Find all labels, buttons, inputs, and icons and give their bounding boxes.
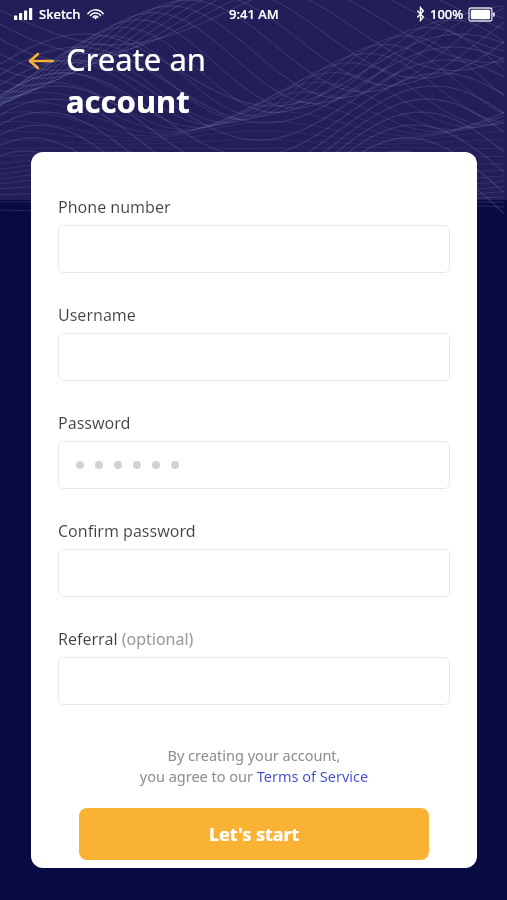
- staticText: Password: [58, 412, 131, 434]
- staticText: account: [66, 80, 190, 122]
- staticText: Username: [58, 304, 136, 326]
- staticText: Phone number: [58, 196, 171, 218]
- staticText: Referral (optional): [58, 628, 194, 650]
- staticText: Create an: [66, 38, 206, 80]
- button[interactable]: [58, 657, 450, 705]
- button[interactable]: [58, 333, 450, 381]
- staticText: Confirm password: [58, 520, 196, 542]
- staticText: By creating your account, you agree to o…: [58, 745, 450, 787]
- staticText: Sketch: [39, 5, 81, 23]
- staticText: Let's start: [209, 822, 300, 847]
- button[interactable]: [58, 441, 450, 489]
- staticText: 100%: [430, 5, 464, 23]
- staticText: 9:41 AM: [229, 5, 279, 23]
- button[interactable]: Back: [24, 44, 58, 78]
- button[interactable]: [58, 549, 450, 597]
- button[interactable]: Let's start: [79, 808, 429, 860]
- button[interactable]: [58, 225, 450, 273]
